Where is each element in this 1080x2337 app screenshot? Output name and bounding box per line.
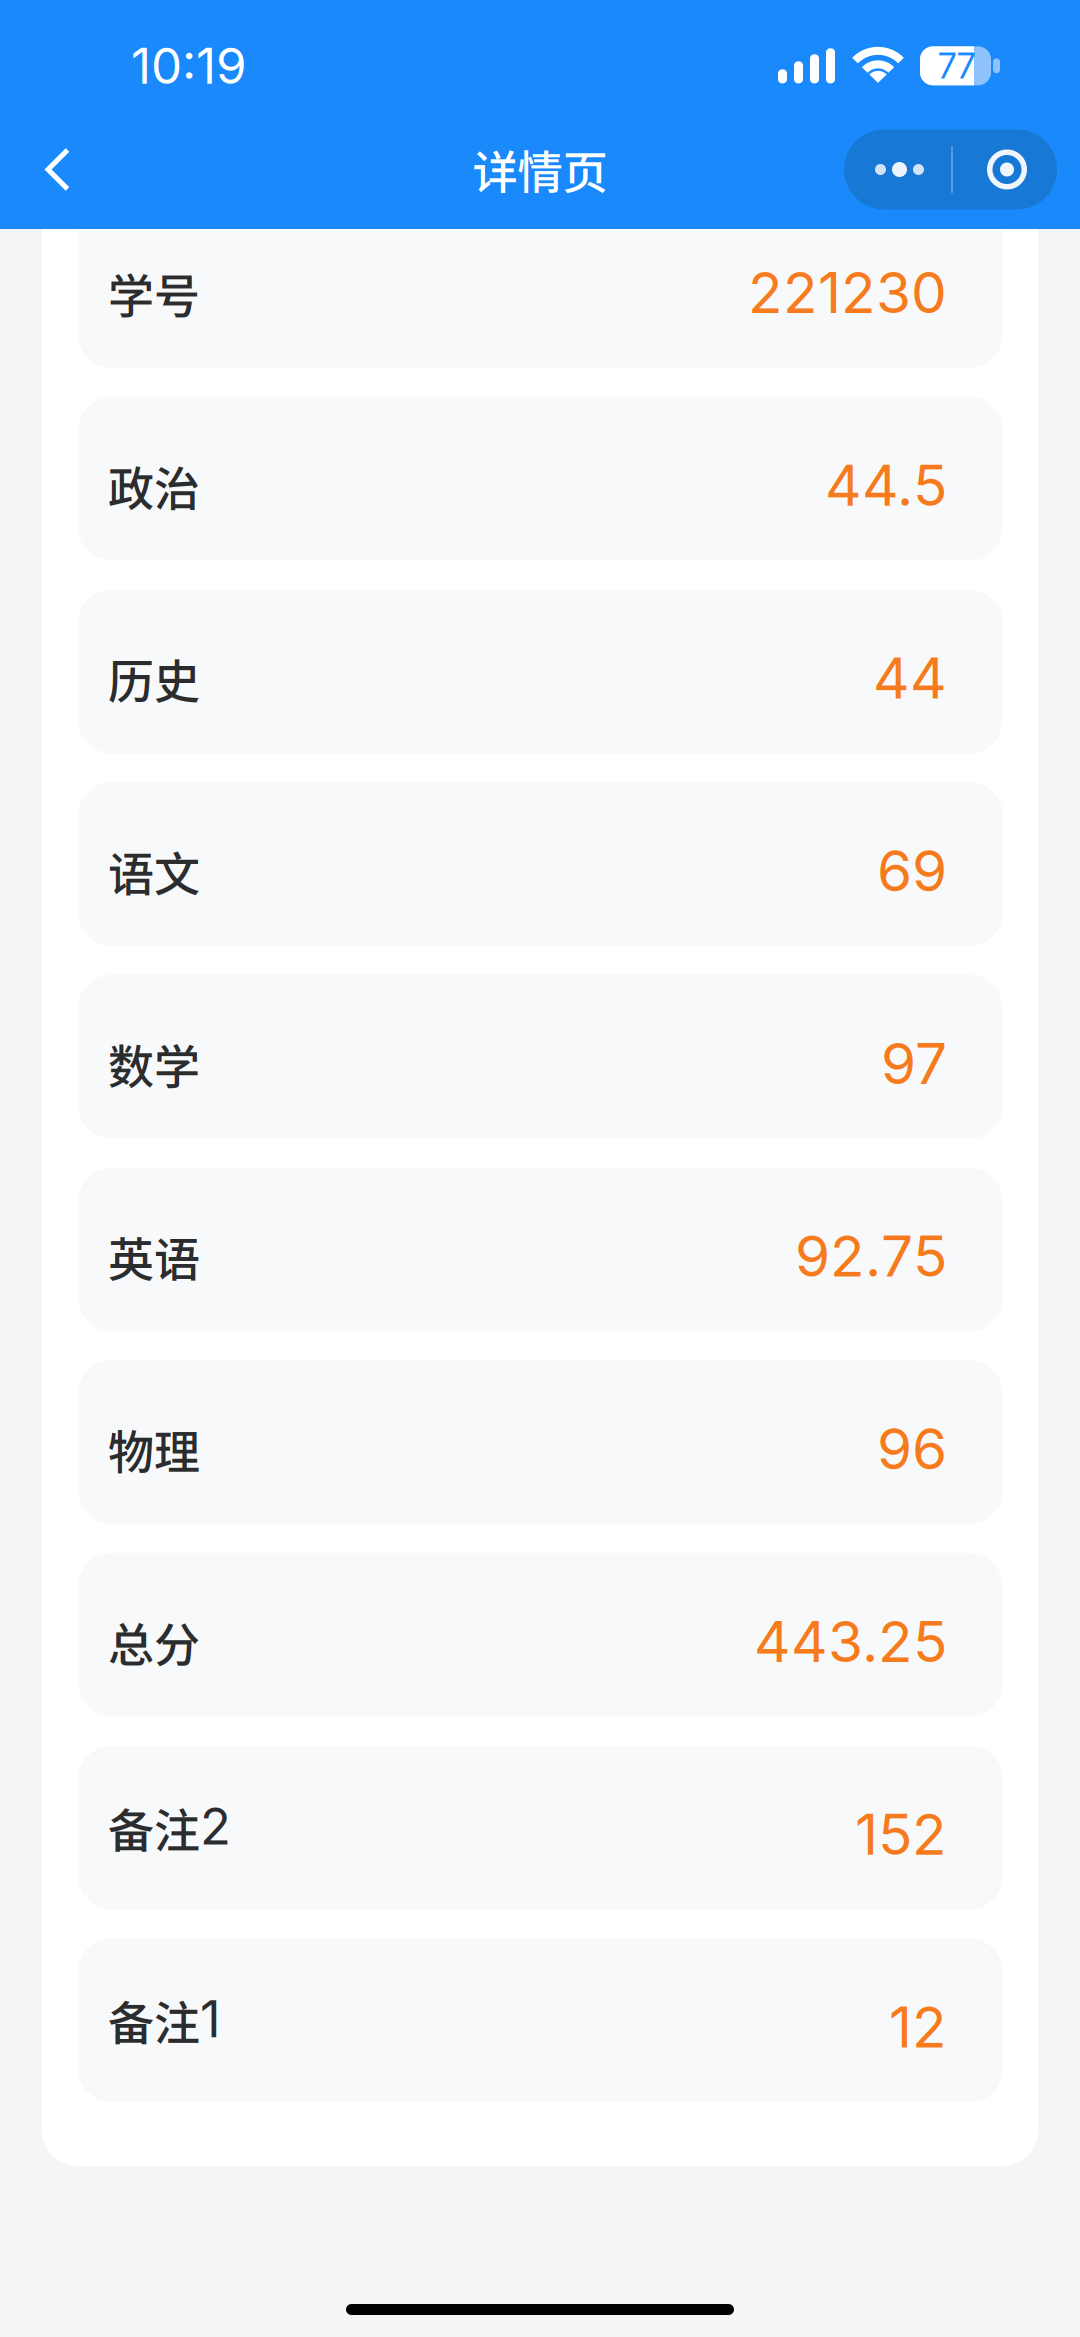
staticText: 92.75 — [795, 1222, 947, 1290]
button[interactable]: 历史 — [78, 589, 1003, 753]
button[interactable]: 备注2 — [78, 1746, 1003, 1910]
button[interactable]: 政治 — [78, 397, 1003, 561]
staticText: 10:19 — [131, 36, 247, 96]
button[interactable]: Back — [16, 121, 100, 217]
staticText: 数学 — [108, 1030, 200, 1097]
staticText: 物理 — [108, 1415, 200, 1482]
staticText: 44.5 — [825, 451, 947, 519]
button[interactable]: More options — [844, 129, 1057, 209]
staticText: 97 — [881, 1029, 947, 1098]
staticText: 总分 — [108, 1608, 200, 1675]
staticText: 69 — [877, 836, 947, 905]
staticText: 政治 — [108, 452, 200, 518]
button[interactable]: 总分 — [78, 1553, 1003, 1717]
button[interactable]: 数学 — [78, 975, 1003, 1139]
staticText: 96 — [877, 1414, 947, 1483]
staticText: 备注2 — [108, 1794, 231, 1860]
staticText: 历史 — [108, 645, 200, 711]
button[interactable]: 备注1 — [78, 1938, 1003, 2102]
button[interactable]: 物理 — [78, 1360, 1003, 1524]
staticText: 44 — [873, 644, 947, 712]
staticText: 77 — [938, 45, 975, 87]
staticText: 语文 — [108, 837, 200, 904]
button[interactable]: 语文 — [78, 782, 1003, 946]
staticText: 221230 — [748, 258, 947, 327]
staticText: 学号 — [108, 259, 200, 326]
button[interactable]: 英语 — [78, 1167, 1003, 1331]
staticText: 12 — [889, 1992, 947, 2061]
staticText: 详情页 — [472, 137, 607, 202]
staticText: 备注1 — [108, 1986, 221, 2053]
staticText: 英语 — [108, 1223, 200, 1289]
staticText: 443.25 — [754, 1607, 947, 1676]
button[interactable]: 学号 — [78, 204, 1003, 368]
staticText: 152 — [855, 1800, 947, 1868]
